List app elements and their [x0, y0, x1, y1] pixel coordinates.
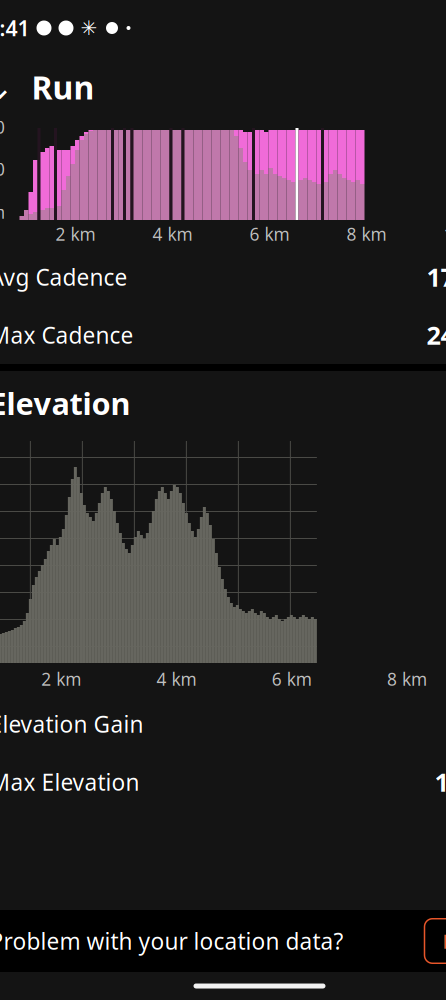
staticText: 120: [0, 157, 5, 180]
staticText: ✳: [80, 17, 97, 39]
staticText: Elevation Gain: [0, 709, 143, 739]
staticText: 8 km: [387, 667, 427, 690]
staticText: 2 km: [41, 667, 81, 690]
staticText: Elevation: [0, 383, 130, 423]
staticText: 4 km: [156, 667, 196, 690]
staticText: 246 spm: [426, 318, 446, 352]
staticText: 6 km: [272, 667, 312, 690]
staticText: ⌄: [0, 67, 14, 107]
staticText: 1,933 m: [434, 765, 446, 799]
staticText: Problem with your location data?: [0, 926, 343, 956]
staticText: Max Cadence: [0, 320, 133, 350]
staticText: 140: [0, 115, 5, 138]
staticText: 4 km: [152, 222, 192, 245]
staticText: 9:41: [0, 14, 29, 42]
staticText: Report: [442, 928, 446, 954]
staticText: Max Elevation: [0, 767, 139, 797]
staticText: Run: [31, 66, 94, 108]
staticText: 174 spm: [426, 260, 446, 294]
staticText: 2 km: [55, 222, 95, 245]
staticText: spm: [0, 200, 5, 223]
button[interactable]: Report: [424, 919, 446, 963]
staticText: 8 km: [346, 222, 386, 245]
staticText: 6 km: [249, 222, 289, 245]
staticText: Avg Cadence: [0, 262, 127, 292]
staticText: 10 km: [443, 222, 446, 245]
button[interactable]: Collapse: [0, 65, 21, 109]
